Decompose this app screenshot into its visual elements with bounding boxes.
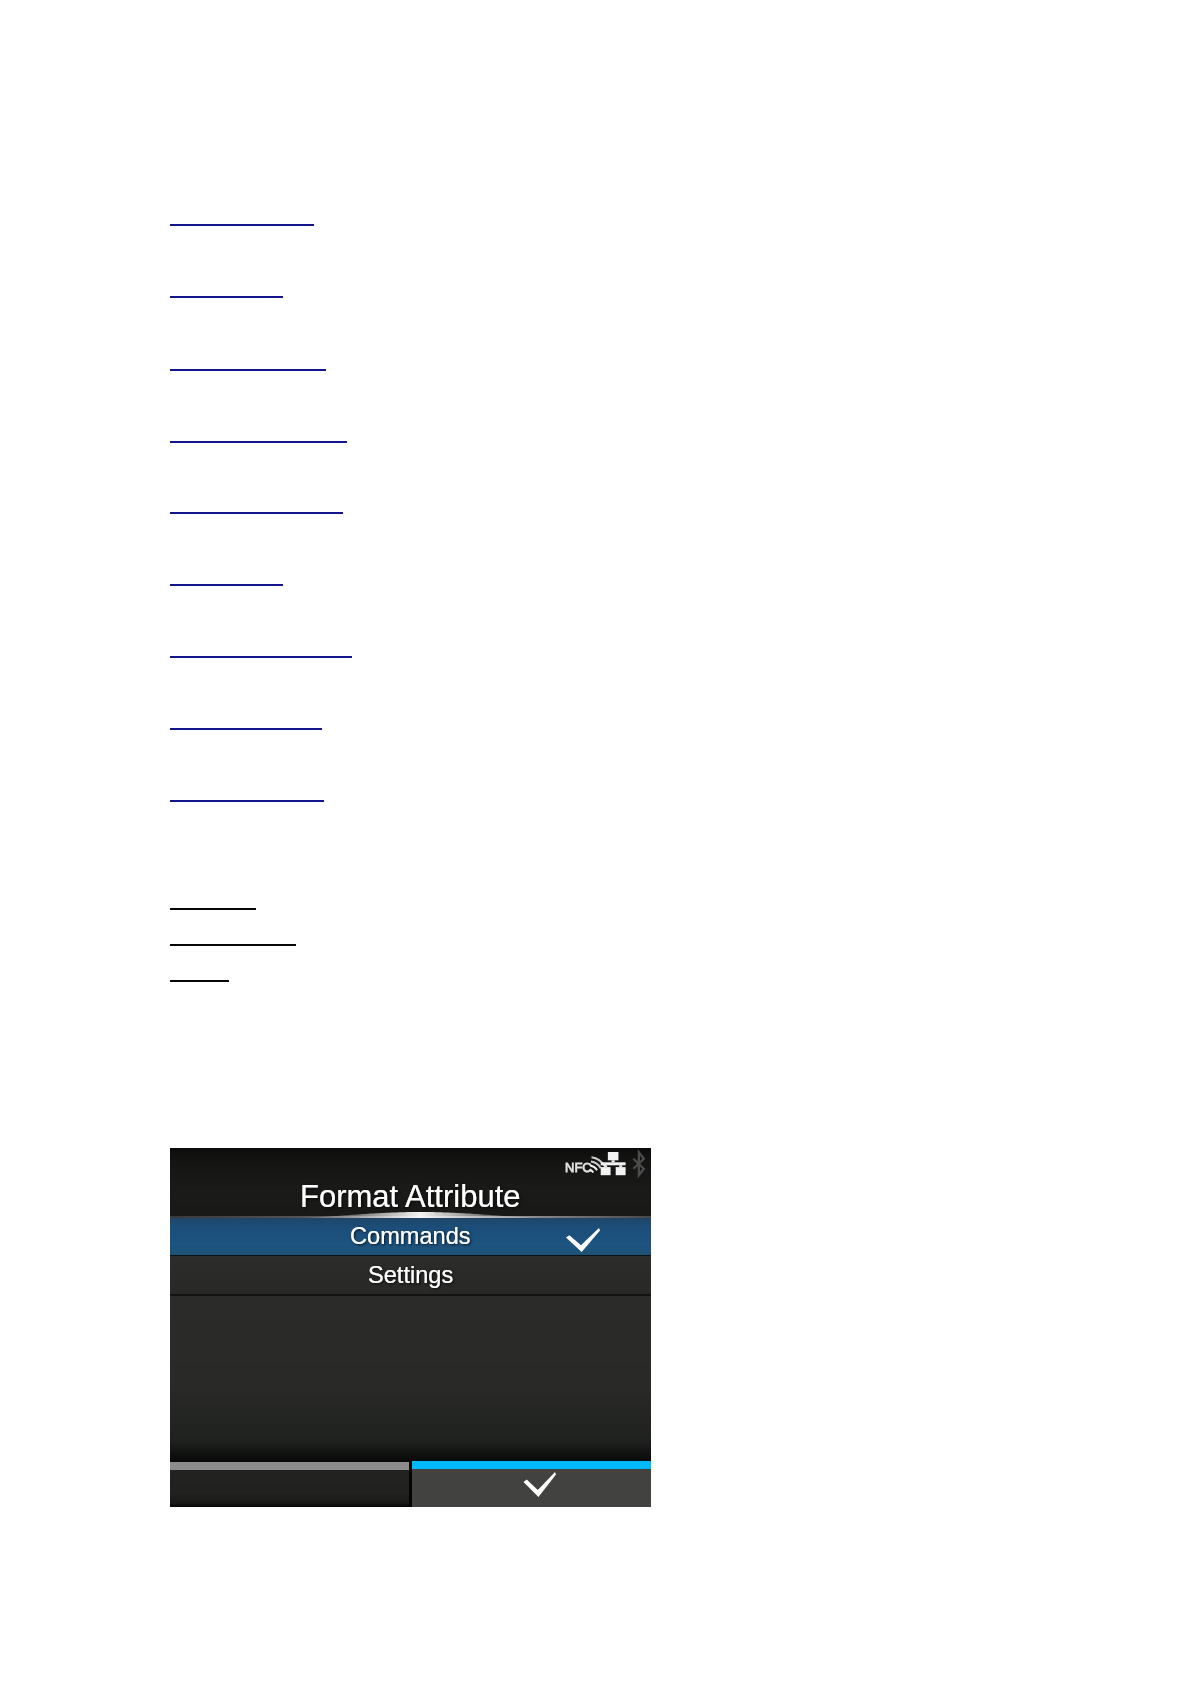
button[interactable]: Information Menu (170, 490, 343, 514)
button[interactable]: Adjustment Menu (170, 419, 347, 443)
button[interactable]: Service Menu Settings (170, 634, 352, 658)
button[interactable]: Settings (170, 958, 229, 982)
staticText: NFC (565, 1160, 592, 1175)
button[interactable]: Commands (170, 886, 256, 910)
button[interactable]: Format Attribute (170, 922, 296, 946)
button[interactable]: Factory Settings (170, 706, 322, 730)
button[interactable]: Interface (170, 274, 283, 298)
button[interactable]: Back (170, 1460, 409, 1507)
button[interactable]: Format Attribute (170, 347, 326, 371)
staticText: Settings (368, 1262, 454, 1288)
button[interactable]: Commands (170, 1218, 651, 1256)
button[interactable]: Interface Settings (170, 778, 324, 802)
button[interactable]: Test Print (170, 562, 283, 586)
staticText: Commands (350, 1223, 471, 1249)
button[interactable]: Confirm (412, 1460, 651, 1507)
button[interactable]: Print Settings (170, 202, 314, 226)
staticText: Format Attribute (300, 1179, 521, 1214)
button[interactable]: Settings (170, 1256, 651, 1296)
